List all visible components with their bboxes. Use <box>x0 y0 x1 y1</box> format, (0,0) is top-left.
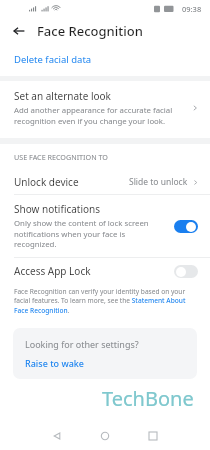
staticText: TechBone <box>102 385 194 412</box>
button[interactable]: Raise to wake <box>25 357 85 369</box>
button[interactable]: Unlock device <box>0 170 210 194</box>
staticText: USE FACE RECOGNITION TO <box>14 152 108 162</box>
staticText: 09:38 <box>182 4 202 14</box>
button[interactable]: Back <box>10 22 28 40</box>
button[interactable]: Recent apps <box>140 426 166 446</box>
button[interactable]: Toggle on <box>174 220 198 233</box>
staticText: Set an alternate look <box>14 89 111 103</box>
button[interactable]: Home <box>92 426 118 446</box>
staticText: Unlock device <box>14 175 79 189</box>
button[interactable]: Set an alternate look <box>0 81 210 135</box>
staticText: Slide to unlock <box>129 176 188 188</box>
staticText: Face Recognition can verify your identit… <box>14 287 196 315</box>
staticText: Only show the content of lock screen not… <box>14 218 168 250</box>
staticText: Access App Lock <box>14 264 91 278</box>
button[interactable]: Access App Lock <box>0 258 210 284</box>
staticText: Show notifications <box>14 202 101 216</box>
staticText: Add another appearance for accurate faci… <box>14 105 184 127</box>
staticText: Looking for other settings? <box>25 338 139 350</box>
staticText: Delete facial data <box>14 53 92 66</box>
staticText: Raise to wake <box>25 357 85 369</box>
button[interactable]: Back <box>44 426 70 446</box>
staticText: Face Recognition <box>37 22 143 40</box>
button[interactable]: Delete facial data <box>0 44 210 74</box>
button[interactable]: Toggle off <box>174 265 198 278</box>
button[interactable]: Show notifications <box>0 195 210 257</box>
